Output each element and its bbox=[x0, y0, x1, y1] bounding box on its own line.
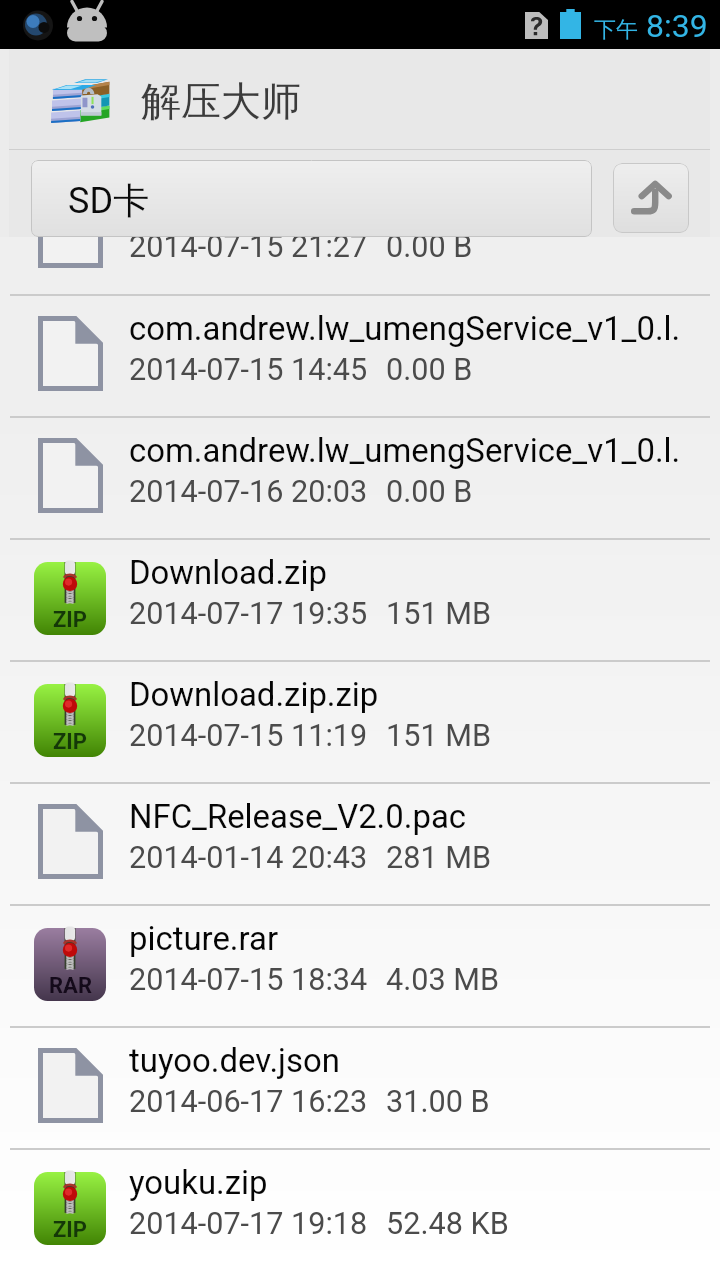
staticText: 2014-07-15 11:19 bbox=[129, 718, 368, 754]
staticText: SD卡 bbox=[68, 178, 149, 223]
staticText: 2014-07-16 20:03 bbox=[129, 474, 368, 510]
staticText: 151 MB bbox=[386, 596, 491, 632]
staticText: 2014-07-15 14:45 bbox=[129, 352, 368, 388]
staticText: 281 MB bbox=[386, 840, 491, 876]
staticText: ZIP bbox=[53, 729, 87, 755]
staticText: youku.zip bbox=[129, 1163, 268, 1202]
staticText: ZIP bbox=[53, 607, 87, 633]
staticText: ZIP bbox=[53, 1217, 87, 1243]
staticText: 2014-07-17 19:35 bbox=[129, 596, 368, 632]
staticText: Download.zip bbox=[129, 553, 327, 592]
button[interactable]: NFC_Release_V2.0.pac bbox=[0, 784, 720, 904]
staticText: RAR bbox=[49, 973, 92, 999]
staticText: 2014-06-17 16:23 bbox=[129, 1084, 368, 1120]
staticText: Download.zip.zip bbox=[129, 675, 379, 714]
staticText: com.andrew.lw_umengService_v1_0.l. bbox=[129, 431, 681, 470]
button[interactable]: tuyoo.dev.json bbox=[0, 1028, 720, 1148]
staticText: 2014-01-14 20:43 bbox=[129, 840, 368, 876]
staticText: 4.03 MB bbox=[386, 962, 500, 998]
button[interactable]: Up one level bbox=[613, 163, 689, 233]
staticText: 151 MB bbox=[386, 718, 491, 754]
button[interactable]: ZIP bbox=[0, 540, 720, 660]
staticText: 52.48 KB bbox=[386, 1206, 509, 1242]
staticText: 0.00 B bbox=[386, 237, 473, 265]
button[interactable]: Hidden.apk bbox=[0, 237, 720, 294]
button[interactable]: ZIP bbox=[0, 1150, 720, 1270]
button[interactable]: com.andrew.lw_umengService_v1_0.l. bbox=[0, 296, 720, 416]
staticText: 2014-07-17 19:18 bbox=[129, 1206, 368, 1242]
staticText: picture.rar bbox=[129, 919, 279, 958]
button[interactable]: SD卡 bbox=[31, 160, 592, 237]
button[interactable]: com.andrew.lw_umengService_v1_0.l. bbox=[0, 418, 720, 538]
staticText: tuyoo.dev.json bbox=[129, 1041, 340, 1080]
staticText: 8:39 bbox=[646, 7, 708, 45]
staticText: 0.00 B bbox=[386, 474, 473, 510]
staticText: 解压大师 bbox=[141, 76, 301, 126]
staticText: 31.00 B bbox=[386, 1084, 490, 1120]
staticText: com.andrew.lw_umengService_v1_0.l. bbox=[129, 309, 681, 348]
staticText: 下午 bbox=[594, 16, 638, 44]
staticText: 2014-07-15 18:34 bbox=[129, 962, 368, 998]
staticText: NFC_Release_V2.0.pac bbox=[129, 797, 467, 836]
staticText: 2014-07-15 21:27 bbox=[129, 237, 368, 265]
button[interactable]: ZIP bbox=[0, 662, 720, 782]
button[interactable]: RAR bbox=[0, 906, 720, 1026]
staticText: 0.00 B bbox=[386, 352, 473, 388]
